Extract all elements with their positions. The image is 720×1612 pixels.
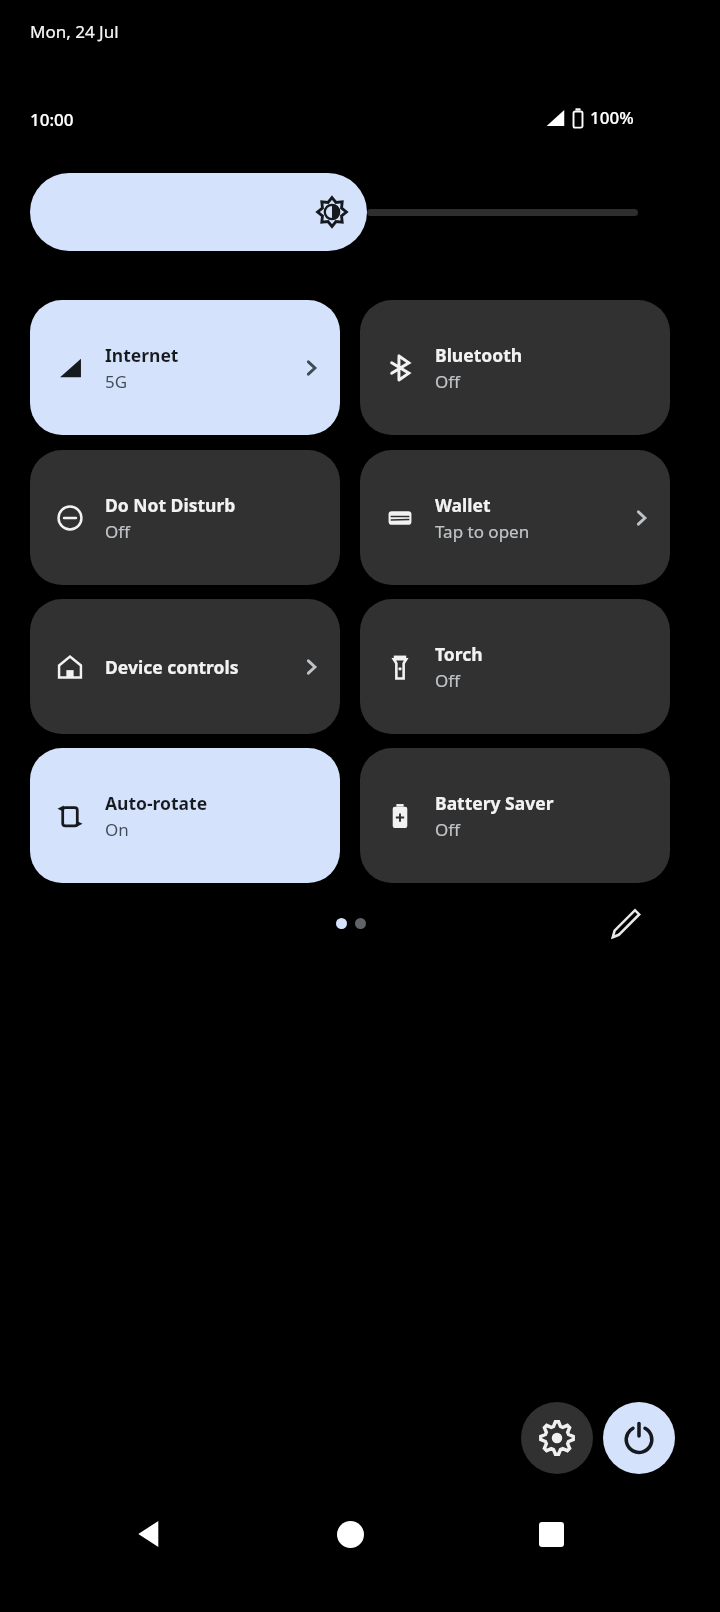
button[interactable]: Wallet — [360, 450, 670, 585]
staticText: 100% — [590, 106, 634, 129]
button[interactable]: Device controls — [30, 599, 340, 734]
button[interactable]: Battery Saver — [360, 748, 670, 883]
button[interactable]: Settings — [521, 1402, 593, 1474]
button[interactable]: Bluetooth — [360, 300, 670, 435]
staticText: 5G — [105, 370, 128, 393]
button[interactable]: Brightness — [30, 173, 638, 251]
staticText: Mon, 24 Jul — [30, 20, 119, 43]
button[interactable]: Home — [310, 1494, 390, 1574]
button[interactable]: Back — [110, 1494, 190, 1574]
staticText: Off — [435, 818, 460, 841]
staticText: On — [105, 818, 129, 841]
staticText: Tap to open — [435, 520, 530, 543]
button[interactable]: Internet — [30, 300, 340, 435]
staticText: Internet — [105, 343, 179, 367]
button[interactable]: Edit tiles — [600, 898, 652, 950]
staticText: Device controls — [105, 655, 239, 679]
staticText: Battery Saver — [435, 791, 554, 815]
staticText: Auto-rotate — [105, 791, 208, 815]
staticText: Off — [435, 669, 460, 692]
button[interactable]: Recent apps — [511, 1494, 591, 1574]
staticText: Do Not Disturb — [105, 493, 236, 517]
staticText: Off — [105, 520, 130, 543]
staticText: Wallet — [435, 493, 491, 517]
staticText: Off — [435, 370, 460, 393]
staticText: 10:00 — [30, 108, 74, 131]
button[interactable]: Torch — [360, 599, 670, 734]
staticText: Bluetooth — [435, 343, 523, 367]
button[interactable]: Auto-rotate — [30, 748, 340, 883]
staticText: Torch — [435, 642, 483, 666]
button[interactable]: Power — [603, 1402, 675, 1474]
button[interactable]: Do Not Disturb — [30, 450, 340, 585]
